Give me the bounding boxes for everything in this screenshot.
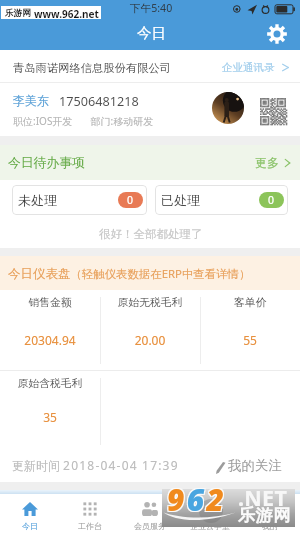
staticText: 很好！全部都处理了 bbox=[99, 227, 203, 241]
staticText: 17506481218 bbox=[59, 92, 139, 109]
staticText: 我的 bbox=[240, 521, 300, 531]
button[interactable]: 企业云学堂 bbox=[180, 494, 240, 533]
button[interactable]: 今日待办事项 bbox=[0, 145, 300, 180]
staticText: 李美东 bbox=[13, 93, 49, 108]
staticText: 962 bbox=[166, 480, 226, 518]
staticText: 客单价 bbox=[200, 296, 300, 310]
button[interactable]: 今日 bbox=[0, 494, 60, 533]
staticText: 工作台 bbox=[60, 521, 120, 531]
staticText: 原始无税毛利 bbox=[100, 296, 200, 310]
staticText: 下午5:40 bbox=[130, 1, 173, 15]
button[interactable]: QR code bbox=[260, 98, 287, 125]
staticText: 更多 bbox=[255, 155, 279, 170]
button[interactable]: 我的 bbox=[240, 494, 300, 533]
button[interactable]: 原始含税毛利 bbox=[0, 371, 100, 450]
staticText: 今日待办事项 bbox=[8, 155, 85, 171]
staticText: 未处理 bbox=[18, 192, 57, 208]
button[interactable]: 已处理 bbox=[155, 185, 288, 215]
button[interactable]: 我的关注 bbox=[214, 453, 284, 475]
staticText: 今日 bbox=[137, 24, 166, 42]
staticText: 20304.94 bbox=[0, 332, 100, 348]
staticText: 更新时间 2018-04-04 17:39 bbox=[12, 457, 179, 473]
staticText: 原始含税毛利 bbox=[0, 377, 100, 391]
staticText: 35 bbox=[0, 409, 100, 425]
staticText: 962 bbox=[166, 478, 226, 516]
staticText: 我的关注 bbox=[228, 457, 282, 474]
button[interactable]: 客单价 bbox=[200, 290, 300, 369]
staticText: 销售金额 bbox=[0, 296, 100, 310]
staticText: www.962.net bbox=[34, 7, 99, 20]
staticText: 青岛雨诺网络信息股份有限公司 bbox=[13, 61, 172, 75]
staticText: 962 bbox=[168, 478, 228, 516]
staticText: 已处理 bbox=[161, 192, 200, 208]
button[interactable]: 青岛雨诺网络信息股份有限公司 bbox=[0, 50, 300, 82]
button[interactable]: 工作台 bbox=[60, 494, 120, 533]
staticText: 企业通讯录 bbox=[222, 61, 275, 74]
staticText: 20.00 bbox=[100, 332, 200, 348]
button[interactable]: 销售金额 bbox=[0, 290, 100, 369]
button[interactable]: Settings bbox=[262, 19, 291, 48]
button[interactable]: 原始无税毛利 bbox=[100, 290, 200, 369]
button[interactable]: 会员服务 bbox=[120, 494, 180, 533]
staticText: 乐游网 bbox=[238, 504, 291, 526]
staticText: 0 bbox=[127, 193, 134, 207]
button[interactable]: 未处理 bbox=[12, 185, 147, 215]
staticText: 今日 bbox=[0, 521, 60, 531]
staticText: 962 bbox=[167, 479, 227, 517]
button[interactable]: Avatar bbox=[212, 92, 244, 124]
staticText: 0 bbox=[268, 193, 275, 207]
staticText: 会员服务 bbox=[120, 521, 180, 531]
staticText: 55 bbox=[200, 332, 300, 348]
staticText: 962 bbox=[168, 480, 228, 518]
staticText: 职位:IOS开发 部门:移动研发 bbox=[13, 114, 154, 128]
button[interactable]: 李美东 bbox=[0, 83, 300, 136]
button[interactable]: 今日仪表盘（轻触仪表数据在ERP中查看详情） bbox=[0, 256, 300, 290]
staticText: .NET bbox=[238, 483, 288, 512]
staticText: 今日仪表盘（轻触仪表数据在ERP中查看详情） bbox=[8, 266, 251, 282]
staticText: 企业云学堂 bbox=[180, 521, 240, 531]
staticText: 乐游网 bbox=[5, 8, 31, 19]
